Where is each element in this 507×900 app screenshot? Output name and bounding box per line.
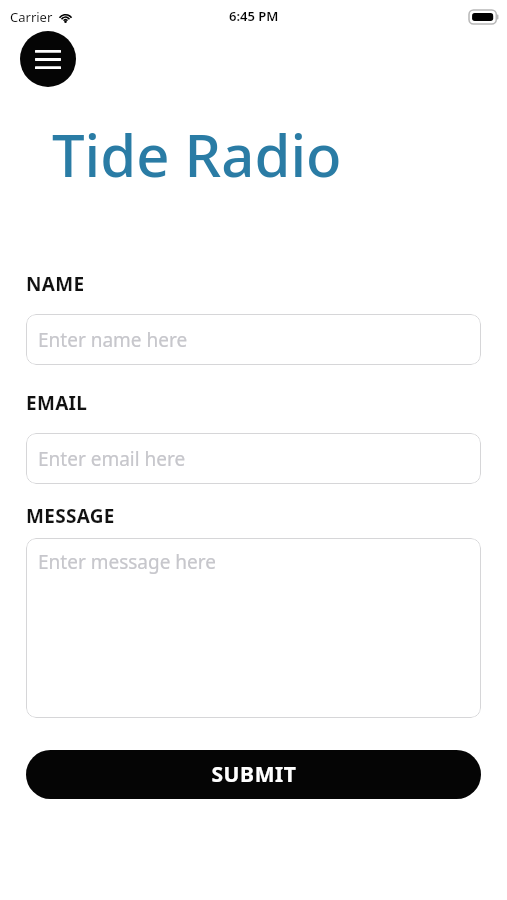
staticText: Carrier bbox=[10, 8, 53, 26]
staticText: Enter email here bbox=[38, 446, 186, 472]
button[interactable]: Enter message here bbox=[26, 538, 481, 718]
staticText: NAME bbox=[26, 271, 85, 297]
button[interactable]: Enter name here bbox=[26, 314, 481, 365]
staticText: 6:45 PM bbox=[229, 7, 279, 25]
staticText: SUBMIT bbox=[211, 760, 297, 789]
button[interactable]: Open navigation menu bbox=[20, 31, 76, 87]
button[interactable]: SUBMIT bbox=[26, 750, 481, 799]
staticText: Enter message here bbox=[38, 549, 216, 575]
staticText: MESSAGE bbox=[26, 503, 115, 529]
staticText: Tide Radio bbox=[52, 115, 342, 194]
staticText: EMAIL bbox=[26, 390, 88, 416]
button[interactable]: Enter email here bbox=[26, 433, 481, 484]
staticText: Enter name here bbox=[38, 327, 188, 353]
